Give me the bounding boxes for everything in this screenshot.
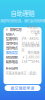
button[interactable]: 提交理赔申请 (4, 85, 40, 91)
staticText: 上海市浦东新区 (21, 43, 39, 53)
staticText: 沪A·8K39L (21, 36, 39, 41)
staticText: 出险地点 (5, 45, 17, 50)
staticText: 提交理赔申请 (10, 85, 34, 91)
staticText: 自助理赔 (10, 8, 34, 17)
staticText: 投保人 (5, 32, 14, 37)
staticText: 预估金额 (5, 55, 17, 60)
staticText: ¥ 2,480.00 (22, 55, 39, 59)
staticText: 补充说明 (5, 65, 17, 70)
staticText: 138****2046 (21, 59, 39, 64)
staticText: 事故类型 (5, 50, 17, 55)
staticText: 车牌号码 (5, 36, 17, 41)
staticText: 单方事故 (27, 50, 39, 55)
staticText: 2024-05-12 (21, 41, 39, 46)
staticText: 请填写出险信息，我们会尽快处理 (0, 18, 45, 23)
staticText: 张** (34, 32, 39, 36)
staticText: 保单信息 (10, 27, 22, 32)
staticText: 联系电话 (5, 59, 17, 64)
staticText: 可描述事故经过（选填） (5, 71, 38, 75)
staticText: 出险时间 (5, 41, 17, 46)
staticText: 平安车险 · 已生效 (26, 25, 39, 34)
